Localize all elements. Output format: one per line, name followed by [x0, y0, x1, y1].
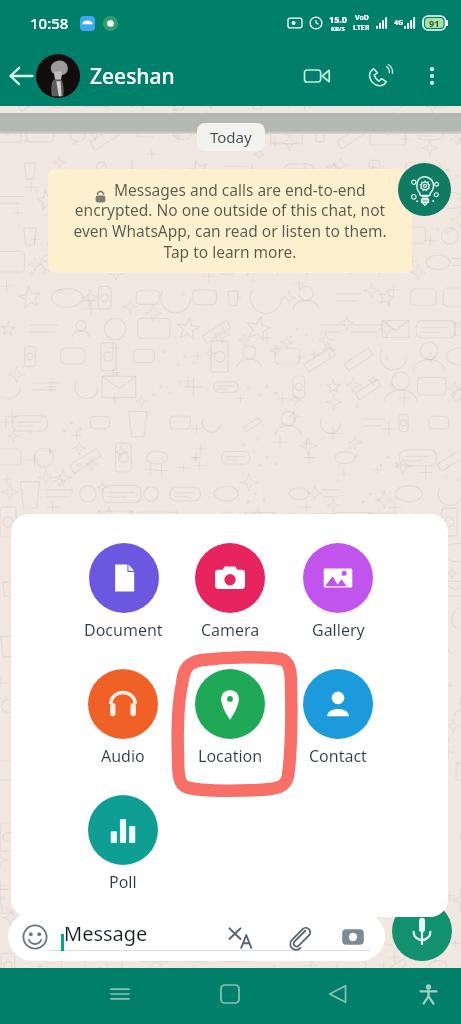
staticText: 15.0: [329, 13, 347, 25]
button[interactable]: Poll: [78, 795, 168, 895]
staticText: Gallery: [312, 619, 365, 641]
button[interactable]: Accessibility: [402, 968, 454, 1020]
button[interactable]: Emoji: [8, 912, 385, 961]
button[interactable]: Messages and calls are end-to-end encryp…: [48, 169, 412, 273]
staticText: Today: [210, 127, 252, 147]
button[interactable]: Recents: [94, 968, 146, 1020]
button[interactable]: Meta AI: [398, 163, 451, 216]
staticText: 91: [429, 17, 440, 29]
button[interactable]: Document: [78, 543, 168, 643]
staticText: Messages and calls are end-to-end encryp…: [64, 179, 396, 263]
button[interactable]: Camera: [185, 543, 275, 643]
button[interactable]: Contact: [293, 669, 383, 769]
staticText: Location: [198, 745, 263, 767]
button[interactable]: Video call: [295, 54, 339, 98]
staticText: KB/S: [331, 25, 345, 33]
staticText: Camera: [201, 619, 260, 641]
button[interactable]: Attach: [283, 921, 315, 953]
button[interactable]: Location: [185, 669, 275, 769]
staticText: LTEЯ: [353, 23, 370, 33]
button[interactable]: Profile photo: [36, 54, 80, 98]
staticText: 10:58: [30, 13, 69, 33]
button[interactable]: Voice message: [392, 901, 452, 961]
button[interactable]: Format text: [224, 921, 256, 953]
staticText: Document: [84, 619, 163, 641]
staticText: 4G: [394, 18, 404, 28]
staticText: VoD: [355, 13, 369, 23]
button[interactable]: Emoji: [19, 921, 51, 953]
button[interactable]: Gallery: [293, 543, 383, 643]
button[interactable]: Audio: [78, 669, 168, 769]
staticText: Zeeshan: [90, 62, 175, 91]
staticText: Audio: [101, 745, 145, 767]
button[interactable]: Back: [0, 55, 42, 97]
staticText: Poll: [109, 871, 137, 893]
button[interactable]: Back: [312, 968, 364, 1020]
button[interactable]: Camera: [337, 921, 369, 953]
staticText: Contact: [309, 745, 367, 767]
button[interactable]: More options: [412, 56, 452, 96]
button[interactable]: Home: [204, 968, 256, 1020]
button[interactable]: Voice call: [357, 54, 401, 98]
staticText: Message: [64, 920, 148, 947]
